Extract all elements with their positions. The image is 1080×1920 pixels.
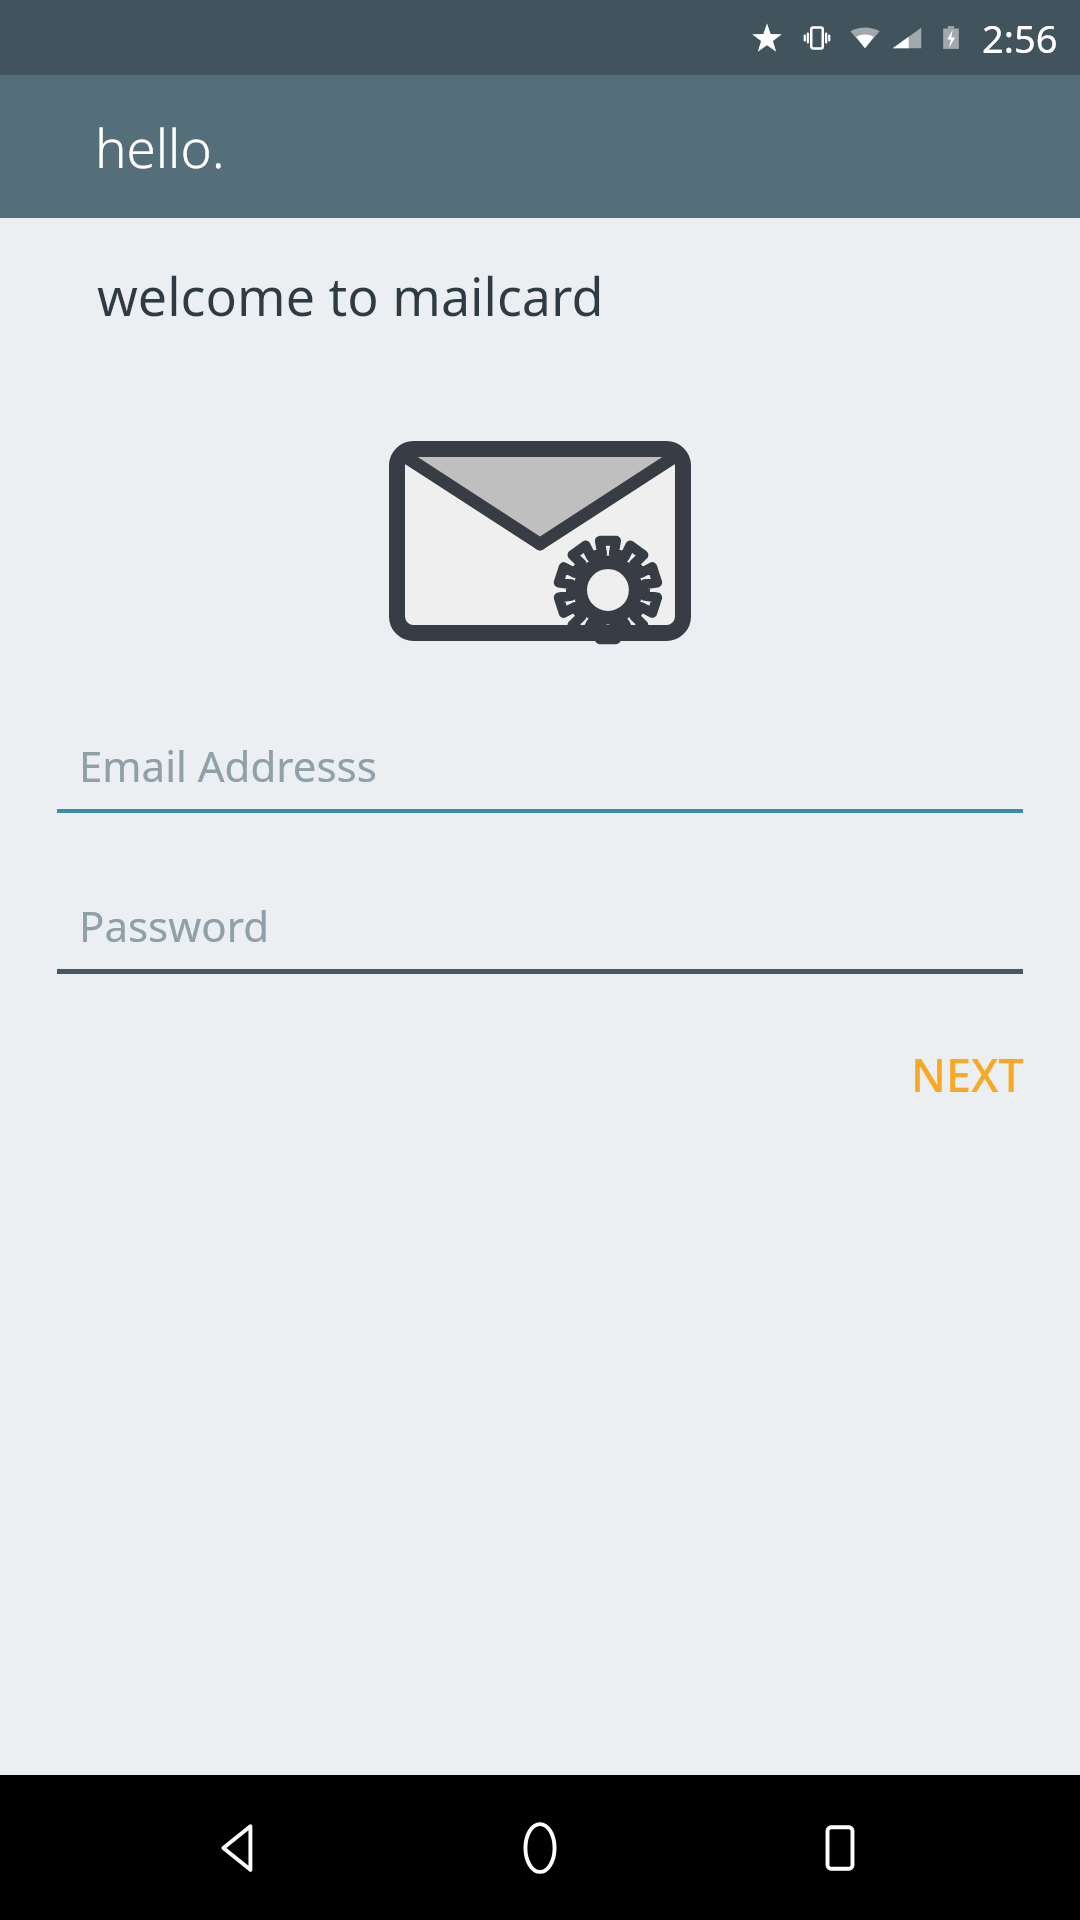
staticText: Password [79,897,269,954]
button[interactable]: Recent apps [780,1788,900,1908]
staticText: 2:56 [982,12,1058,64]
button[interactable]: NEXT [893,1026,1042,1123]
button[interactable]: Email Addresss [57,721,1023,813]
staticText: ADVANCED SETUP [373,1787,708,1840]
staticText: NEXT [911,1044,1024,1105]
button[interactable]: ADVANCED SETUP [343,1765,738,1862]
button[interactable]: Password [57,881,1023,974]
button[interactable]: Back [180,1788,300,1908]
button[interactable]: Home [480,1788,600,1908]
staticText: hello. [95,111,225,183]
staticText: welcome to mailcard [97,260,604,331]
staticText: Email Addresss [79,737,377,794]
